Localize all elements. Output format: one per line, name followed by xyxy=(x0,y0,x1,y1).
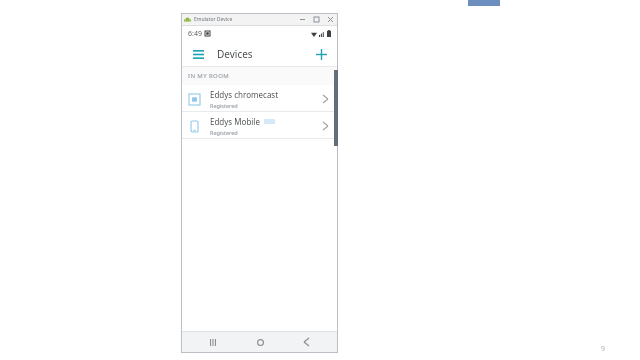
button[interactable]: Recent apps xyxy=(198,331,228,353)
staticText: Devices xyxy=(217,47,253,61)
staticText: 9 xyxy=(601,344,606,354)
button[interactable]: Home xyxy=(245,331,275,353)
button[interactable]: Close xyxy=(323,13,338,26)
button[interactable]: Eddys Mobile xyxy=(181,112,338,139)
staticText: Eddys chromecast xyxy=(210,89,279,100)
button[interactable]: Minimize xyxy=(295,13,309,26)
staticText: Eddys Mobile xyxy=(210,116,260,127)
staticText: 6:49 xyxy=(188,29,202,39)
button[interactable]: Eddys chromecast xyxy=(181,85,338,112)
button[interactable]: Maximize xyxy=(309,13,323,26)
staticText: Registered xyxy=(210,129,238,136)
button[interactable]: Open navigation menu xyxy=(187,43,209,65)
button[interactable]: Add device xyxy=(310,43,332,65)
staticText: Registered xyxy=(210,102,238,109)
staticText: IN MY ROOM xyxy=(188,72,230,80)
button[interactable]: Back xyxy=(291,331,321,353)
staticText: Emulator Device xyxy=(194,16,233,23)
